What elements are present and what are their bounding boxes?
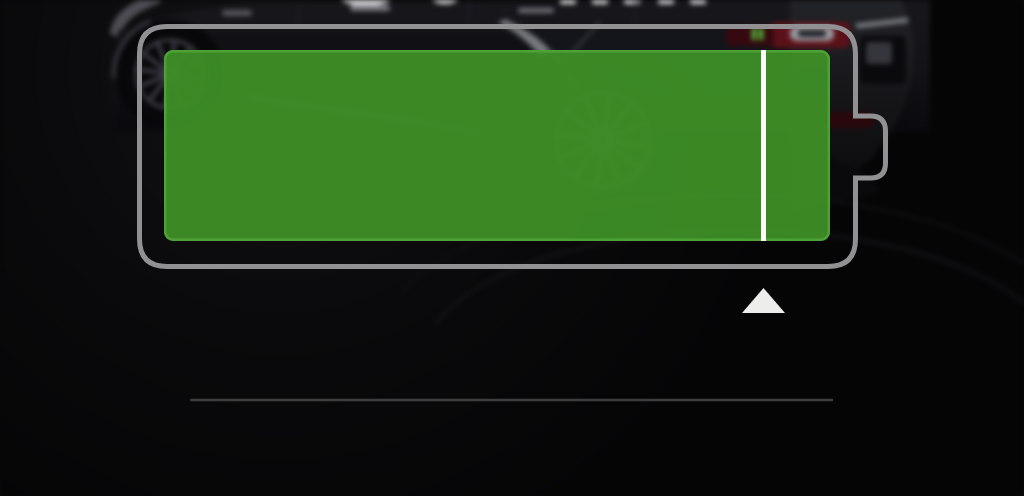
button[interactable]: Charge limit [0, 0, 1024, 496]
